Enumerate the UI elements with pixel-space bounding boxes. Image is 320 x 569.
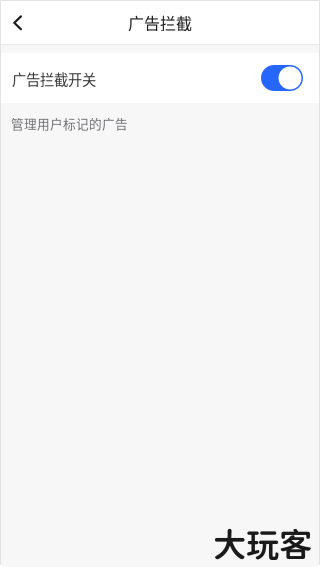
staticText: 管理用户标记的广告: [11, 114, 128, 132]
button[interactable]: 广告拦截开关: [0, 53, 320, 103]
staticText: 大玩客: [213, 525, 312, 564]
staticText: 广告拦截开关: [12, 69, 96, 89]
staticText: 广告拦截: [128, 11, 192, 34]
button[interactable]: Back: [0, 0, 44, 44]
